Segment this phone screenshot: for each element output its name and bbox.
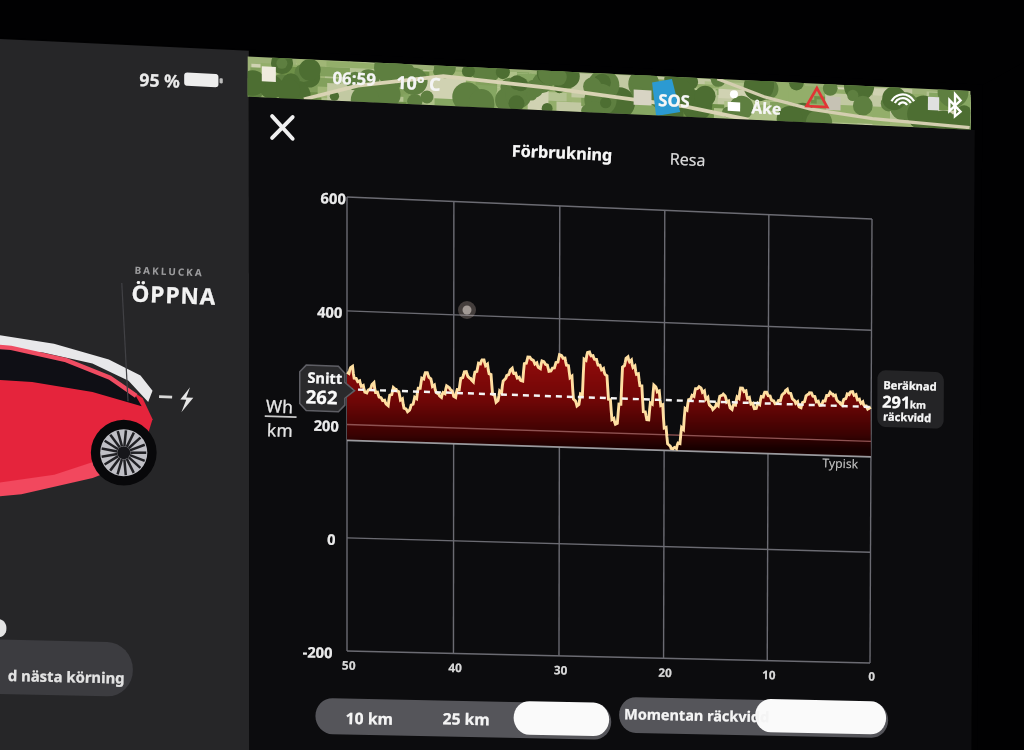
button[interactable]: Öppna bakluckan (96, 250, 226, 310)
button[interactable]: Åke profil (722, 82, 806, 124)
button[interactable]: Bluetooth (938, 86, 978, 128)
button[interactable]: SOS (640, 74, 694, 116)
button[interactable]: Varning (796, 82, 842, 124)
button[interactable]: Snitt 262 Wh per km (294, 364, 356, 424)
button[interactable]: 25 km (414, 699, 512, 743)
button[interactable]: Förbrukning tab (500, 140, 625, 174)
button[interactable]: Genomsnittlig räckvidd (754, 697, 890, 741)
button[interactable]: Momentan räckvidd (620, 694, 760, 738)
button[interactable]: Hela resan (510, 700, 612, 744)
button[interactable]: 10 km (314, 697, 414, 741)
button[interactable]: Karta (300, 50, 520, 96)
button[interactable]: Förvärm inför nästa körning (0, 620, 140, 700)
button[interactable]: Close (258, 101, 310, 153)
button[interactable]: Resa tab (660, 146, 722, 180)
button[interactable]: Wi-Fi (880, 86, 932, 128)
button[interactable]: Beräknad räckvidd 291 km (874, 362, 952, 430)
